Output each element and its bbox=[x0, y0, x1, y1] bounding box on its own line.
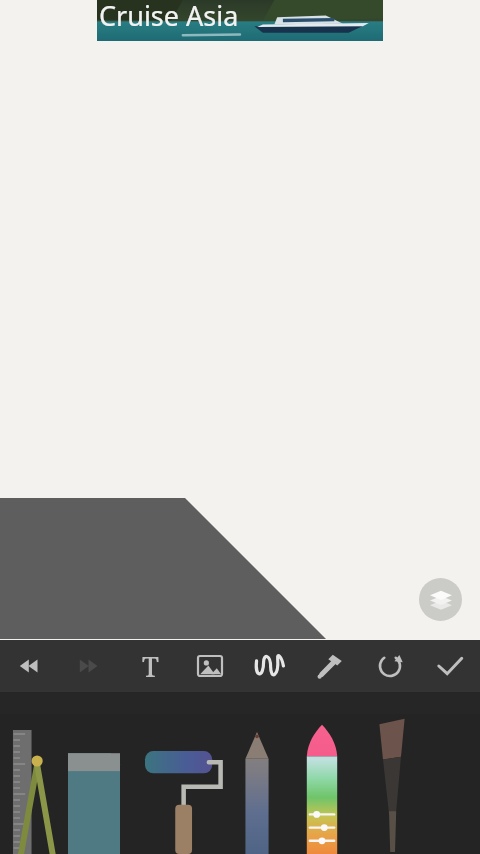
button[interactable]: Image bbox=[180, 640, 240, 692]
button[interactable]: Ruler and compass bbox=[8, 730, 70, 854]
staticText: T bbox=[142, 648, 159, 685]
button[interactable]: Text bbox=[120, 640, 180, 692]
button[interactable]: Cruise Asia advertisement bbox=[97, 0, 383, 41]
button[interactable]: Color crayon bbox=[303, 722, 341, 854]
button[interactable]: Done bbox=[420, 640, 480, 692]
button[interactable]: Redo bbox=[60, 640, 120, 692]
button[interactable]: Eraser bbox=[68, 742, 120, 854]
button[interactable]: Brush stroke bbox=[240, 640, 300, 692]
button[interactable]: Undo bbox=[0, 640, 60, 692]
button[interactable]: Paint roller bbox=[145, 742, 229, 854]
button[interactable]: Layers bbox=[419, 578, 462, 621]
button[interactable]: Brush bbox=[365, 716, 425, 852]
staticText: Cruise Asia bbox=[99, 0, 239, 34]
button[interactable]: Rotate bbox=[360, 640, 420, 692]
button[interactable]: Color picker bbox=[300, 640, 360, 692]
button[interactable]: Pencil bbox=[240, 732, 274, 854]
